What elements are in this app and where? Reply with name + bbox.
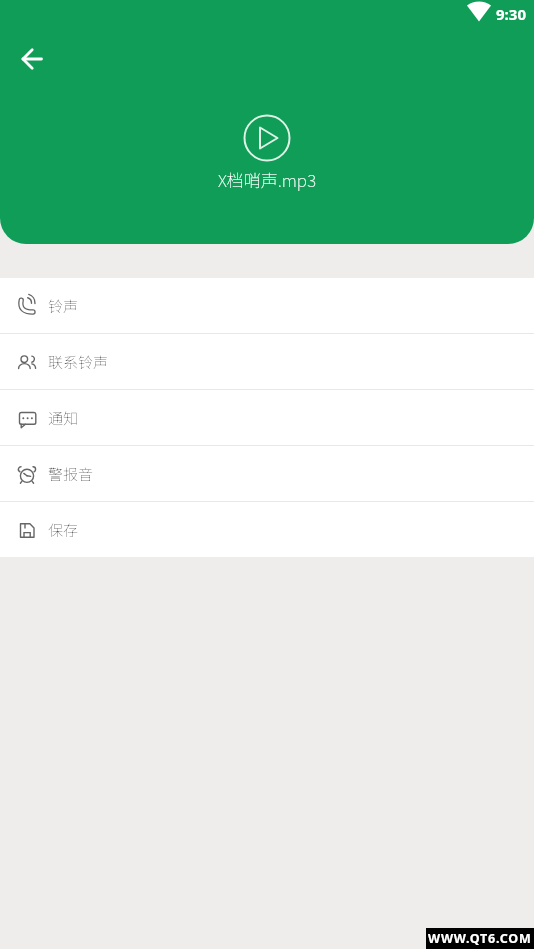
staticText: WWW.QT6.COM (428, 930, 532, 947)
button[interactable]: 通知 (0, 390, 534, 445)
button[interactable]: 铃声 (0, 278, 534, 333)
staticText: X档哨声.mp3 (218, 167, 316, 192)
staticText: 警报音 (48, 463, 94, 485)
staticText: 9:30 (496, 4, 526, 24)
staticText: 铃声 (48, 295, 79, 317)
button[interactable] (243, 114, 291, 162)
button[interactable]: 警报音 (0, 446, 534, 501)
button[interactable]: 联系铃声 (0, 334, 534, 389)
button[interactable] (10, 37, 54, 81)
button[interactable]: 保存 (0, 502, 534, 557)
staticText: 联系铃声 (48, 351, 109, 373)
staticText: 保存 (48, 519, 79, 541)
staticText: 通知 (48, 407, 79, 429)
